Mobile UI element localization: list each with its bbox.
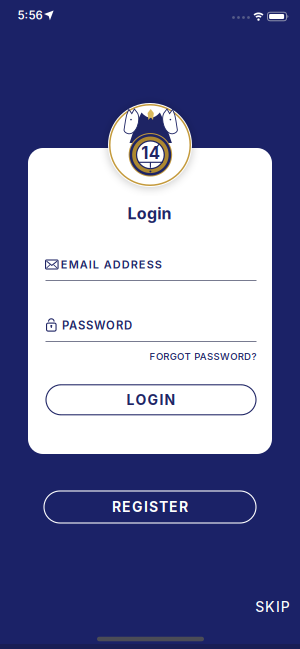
button[interactable]: REGISTER <box>44 491 256 523</box>
button[interactable]: Email address <box>45 255 256 281</box>
staticText: EMAIL ADDRESS <box>61 258 162 271</box>
staticText: 5:56 <box>17 9 42 22</box>
button[interactable]: SKIP <box>255 598 290 615</box>
staticText: FORGOT PASSWORD? <box>149 351 256 362</box>
staticText: Login <box>127 204 172 223</box>
staticText: PASSWORD <box>62 319 132 332</box>
button[interactable]: Password <box>45 316 256 342</box>
button[interactable]: FORGOT PASSWORD? <box>149 351 256 362</box>
staticText: LOGIN <box>126 391 175 408</box>
staticText: REGISTER <box>112 498 188 515</box>
button[interactable]: LOGIN <box>46 385 256 415</box>
staticText: 14 <box>141 143 160 163</box>
staticText: SKIP <box>255 598 290 615</box>
